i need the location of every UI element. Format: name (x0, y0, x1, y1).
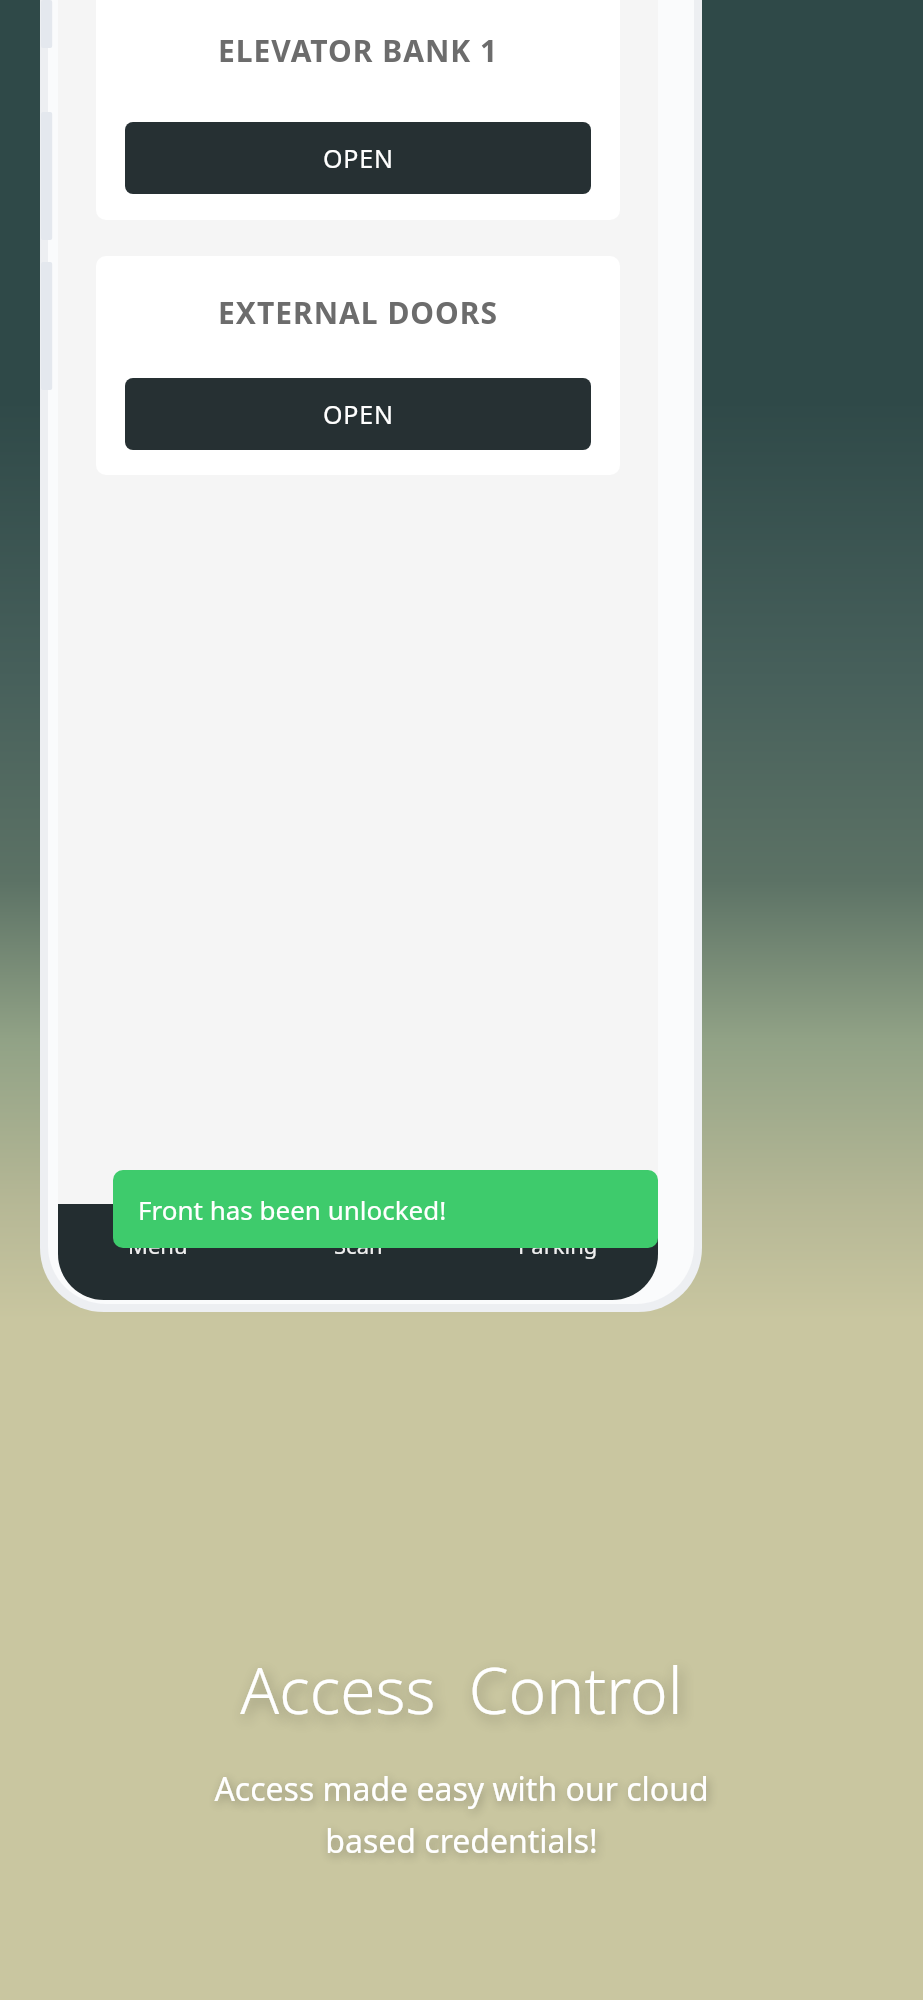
staticText: based credentials! (325, 1819, 598, 1863)
button[interactable]: Front has been unlocked! (113, 1170, 658, 1248)
staticText: ELEVATOR BANK 1 (218, 30, 499, 71)
staticText: Front has been unlocked! (138, 1192, 447, 1227)
staticText: Menu (128, 1230, 188, 1260)
staticText: OPEN (323, 141, 394, 175)
button[interactable]: OPEN (125, 122, 591, 194)
staticText: EXTERNAL DOORS (218, 292, 499, 333)
staticText: Parking (518, 1230, 598, 1260)
button[interactable]: OPEN (125, 378, 591, 450)
staticText: Access Control (240, 1646, 683, 1733)
button[interactable]: Menu (78, 1230, 238, 1260)
staticText: Scan (334, 1230, 383, 1260)
staticText: Access made easy with our cloud (214, 1767, 709, 1811)
button[interactable]: Scan (278, 1230, 438, 1260)
button[interactable]: Parking (478, 1230, 638, 1260)
staticText: OPEN (323, 397, 394, 431)
